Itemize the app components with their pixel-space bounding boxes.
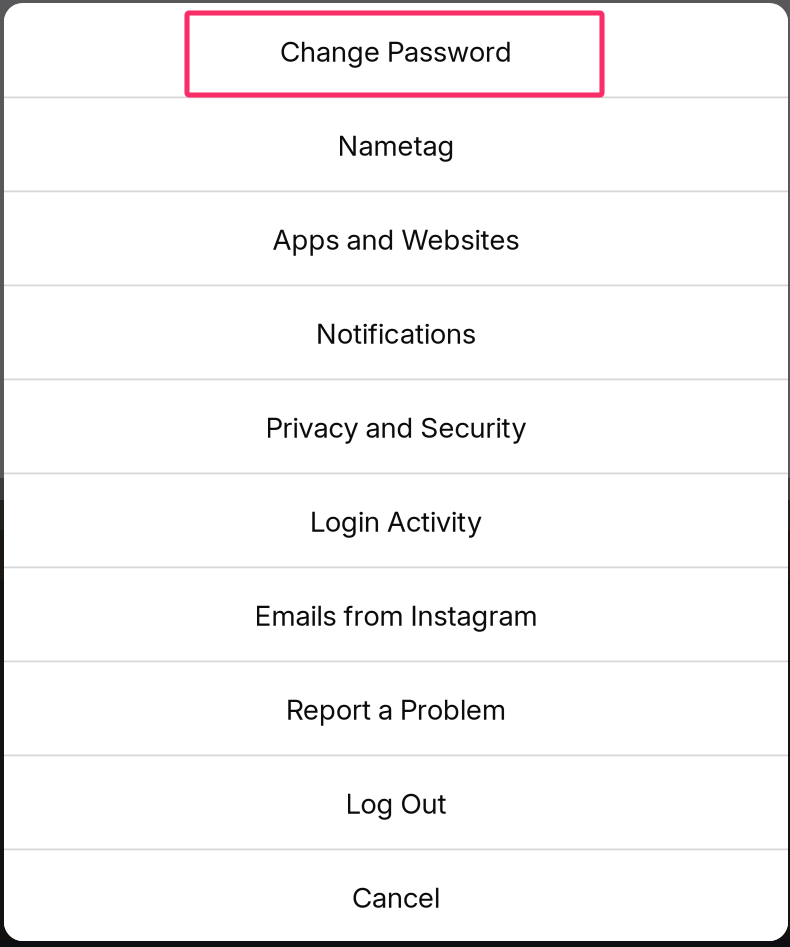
- staticText: Cancel: [352, 881, 440, 914]
- button[interactable]: Notifications: [4, 286, 788, 380]
- button[interactable]: Emails from Instagram: [4, 568, 788, 662]
- button[interactable]: Cancel: [4, 850, 788, 944]
- staticText: Notifications: [316, 317, 476, 350]
- staticText: Login Activity: [310, 505, 482, 538]
- staticText: Change Password: [280, 35, 512, 68]
- staticText: Nametag: [337, 129, 454, 162]
- staticText: Emails from Instagram: [254, 599, 537, 632]
- button[interactable]: Report a Problem: [4, 662, 788, 756]
- staticText: Privacy and Security: [265, 411, 526, 444]
- button[interactable]: Change Password: [4, 4, 788, 98]
- button[interactable]: Login Activity: [4, 474, 788, 568]
- button[interactable]: Apps and Websites: [4, 192, 788, 286]
- staticText: Log Out: [345, 787, 446, 820]
- button[interactable]: Privacy and Security: [4, 380, 788, 474]
- button[interactable]: Log Out: [4, 756, 788, 850]
- button[interactable]: Nametag: [4, 98, 788, 192]
- staticText: Apps and Websites: [272, 223, 519, 256]
- staticText: Report a Problem: [286, 693, 506, 726]
